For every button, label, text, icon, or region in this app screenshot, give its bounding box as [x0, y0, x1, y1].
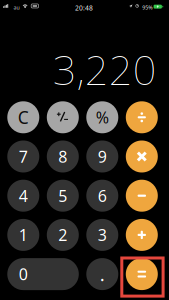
button[interactable]: Add	[126, 219, 158, 251]
staticText: .	[100, 262, 105, 286]
staticText: 20:48	[75, 3, 93, 12]
button[interactable]: 7	[7, 140, 39, 172]
staticText: 2	[58, 224, 67, 245]
button[interactable]: 2	[47, 219, 79, 251]
staticText: 4	[19, 185, 28, 206]
button[interactable]: .	[86, 258, 118, 290]
button[interactable]: Toggle sign	[47, 101, 79, 133]
button[interactable]: 5	[47, 180, 79, 212]
staticText: 7	[19, 146, 28, 167]
button[interactable]: 6	[86, 180, 118, 212]
button[interactable]: 8	[47, 140, 79, 172]
button[interactable]: C	[7, 101, 39, 133]
staticText: 8	[58, 146, 67, 167]
button[interactable]: Equals	[126, 258, 158, 290]
staticText: 0	[19, 263, 28, 285]
button[interactable]: 4	[7, 180, 39, 212]
staticText: 95%	[142, 4, 152, 11]
staticText: 5	[58, 185, 67, 206]
button[interactable]: 9	[86, 140, 118, 172]
button[interactable]: %	[86, 101, 118, 133]
button[interactable]: 3	[86, 219, 118, 251]
button[interactable]: Multiply	[126, 140, 158, 172]
staticText: C	[18, 106, 29, 129]
button[interactable]: Divide	[126, 101, 158, 133]
staticText: 1	[19, 224, 28, 245]
staticText: 3	[98, 224, 107, 245]
button[interactable]: 1	[7, 219, 39, 251]
staticText: 3,220	[53, 42, 157, 96]
button[interactable]: 0	[7, 258, 79, 290]
staticText: 9	[98, 146, 107, 167]
staticText: %	[96, 107, 109, 128]
staticText: au	[14, 4, 20, 11]
button[interactable]: Subtract	[126, 180, 158, 212]
staticText: 6	[98, 185, 107, 206]
